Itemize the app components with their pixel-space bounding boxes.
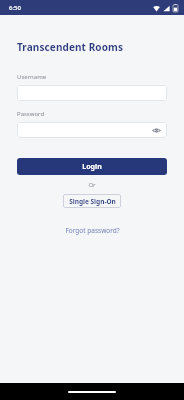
staticText: Username [17,73,47,81]
button[interactable]: Show password [151,125,162,136]
button[interactable]: Forgot password? [61,224,124,237]
staticText: Single Sign-On [69,197,116,206]
staticText: Password [17,110,45,118]
staticText: Login [82,162,102,172]
staticText: Transcendent Rooms [17,40,124,54]
button[interactable]: Login [17,158,167,175]
staticText: Or [88,181,96,189]
staticText: Forgot password? [65,226,120,235]
button[interactable]: Show password [17,122,167,138]
button[interactable]: Single Sign-On [63,194,121,208]
staticText: 6:50 [9,4,21,12]
button[interactable] [17,85,167,101]
other: Home gesture bar [68,391,116,393]
